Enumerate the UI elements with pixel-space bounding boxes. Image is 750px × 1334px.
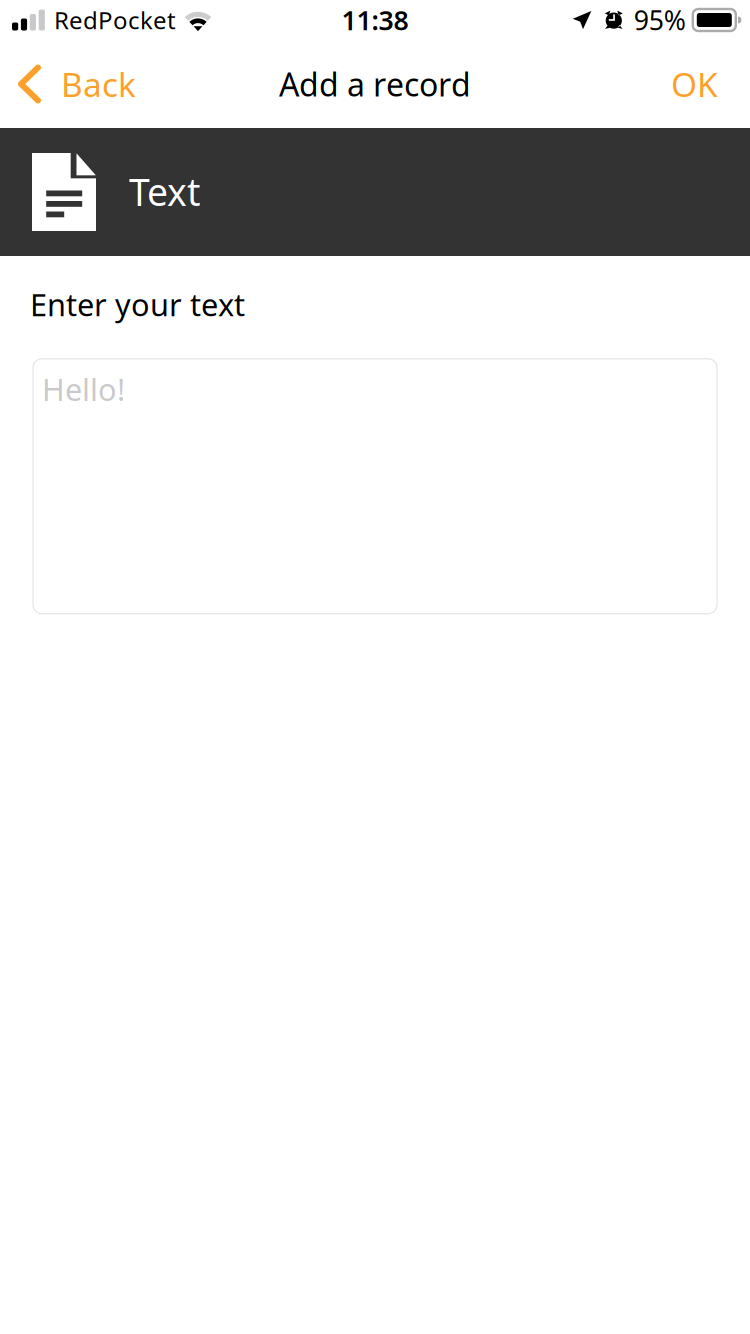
staticText: Hello! bbox=[42, 369, 125, 409]
staticText: 95% bbox=[634, 2, 686, 38]
staticText: Add a record bbox=[279, 63, 471, 105]
staticText: Enter your text bbox=[30, 284, 245, 325]
staticText: 11:38 bbox=[341, 2, 408, 38]
staticText: OK bbox=[671, 62, 718, 106]
staticText: RedPocket bbox=[54, 4, 176, 36]
staticText: Back bbox=[61, 62, 136, 106]
staticText: Text bbox=[129, 167, 200, 216]
button[interactable]: Enter your text bbox=[0, 325, 750, 614]
button[interactable]: OK bbox=[649, 40, 750, 128]
button[interactable]: Back bbox=[0, 40, 152, 128]
